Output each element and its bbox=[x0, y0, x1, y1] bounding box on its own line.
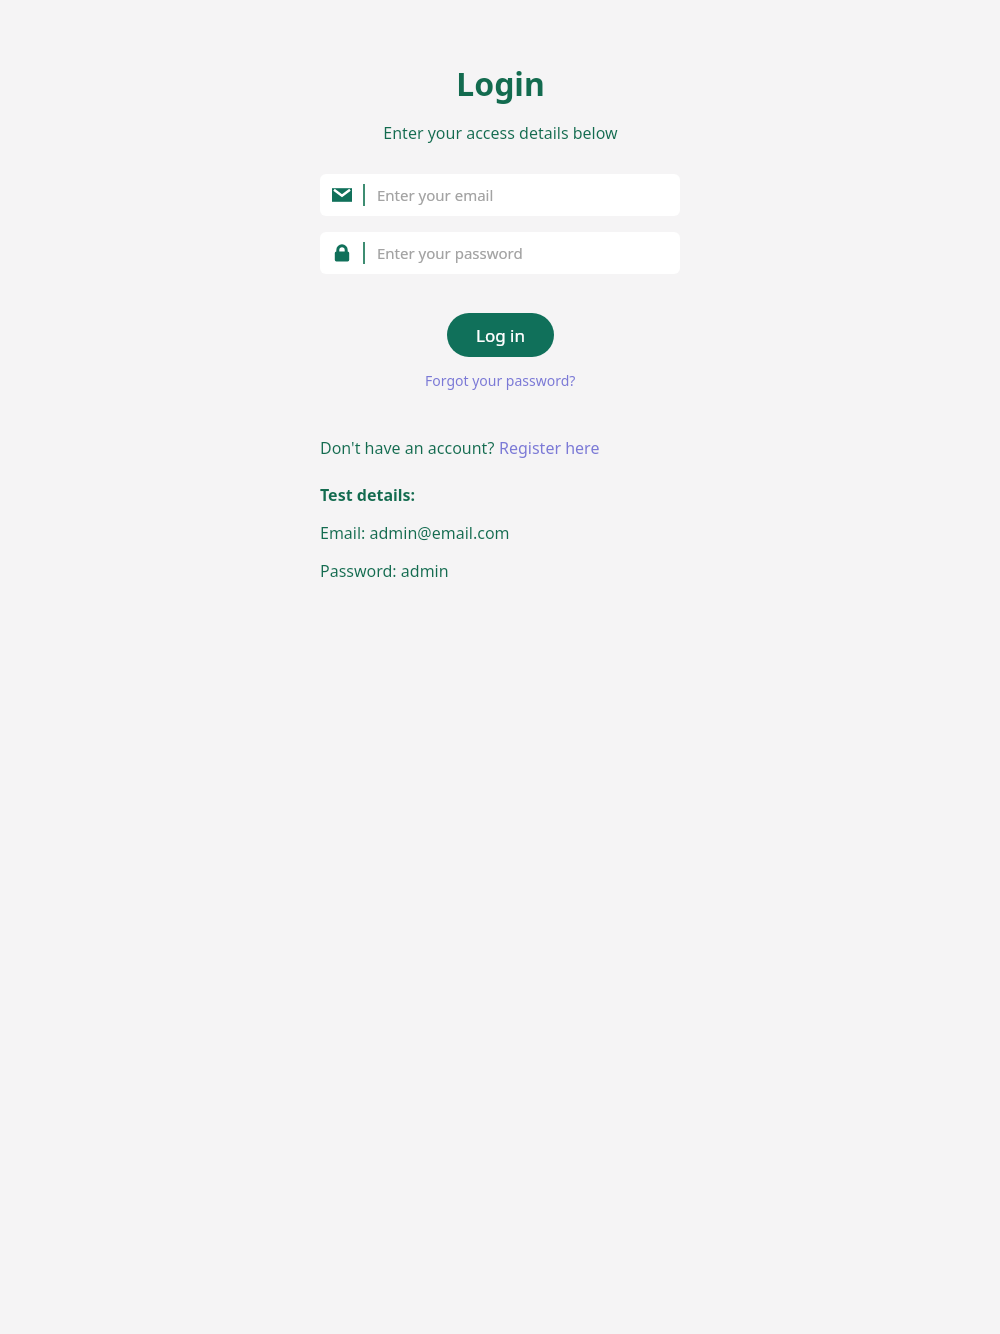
staticText: Login bbox=[456, 62, 545, 106]
staticText: Enter your access details below bbox=[383, 122, 618, 144]
staticText: Register here bbox=[499, 437, 600, 459]
button[interactable]: Forgot your password? bbox=[421, 369, 580, 392]
button[interactable]: Enter your email bbox=[320, 174, 680, 216]
button[interactable]: Enter your password bbox=[320, 232, 680, 274]
staticText: Test details: bbox=[320, 484, 416, 506]
staticText: Forgot your password? bbox=[425, 371, 576, 390]
staticText: Don't have an account? bbox=[320, 437, 499, 459]
button[interactable]: Register here bbox=[499, 437, 600, 459]
staticText: Enter your password bbox=[377, 243, 523, 263]
staticText: Email: admin@email.com bbox=[320, 522, 510, 544]
staticText: Log in bbox=[476, 324, 525, 347]
staticText: Enter your email bbox=[377, 185, 494, 205]
staticText: Password: admin bbox=[320, 560, 449, 582]
button[interactable]: Log in bbox=[447, 313, 554, 357]
